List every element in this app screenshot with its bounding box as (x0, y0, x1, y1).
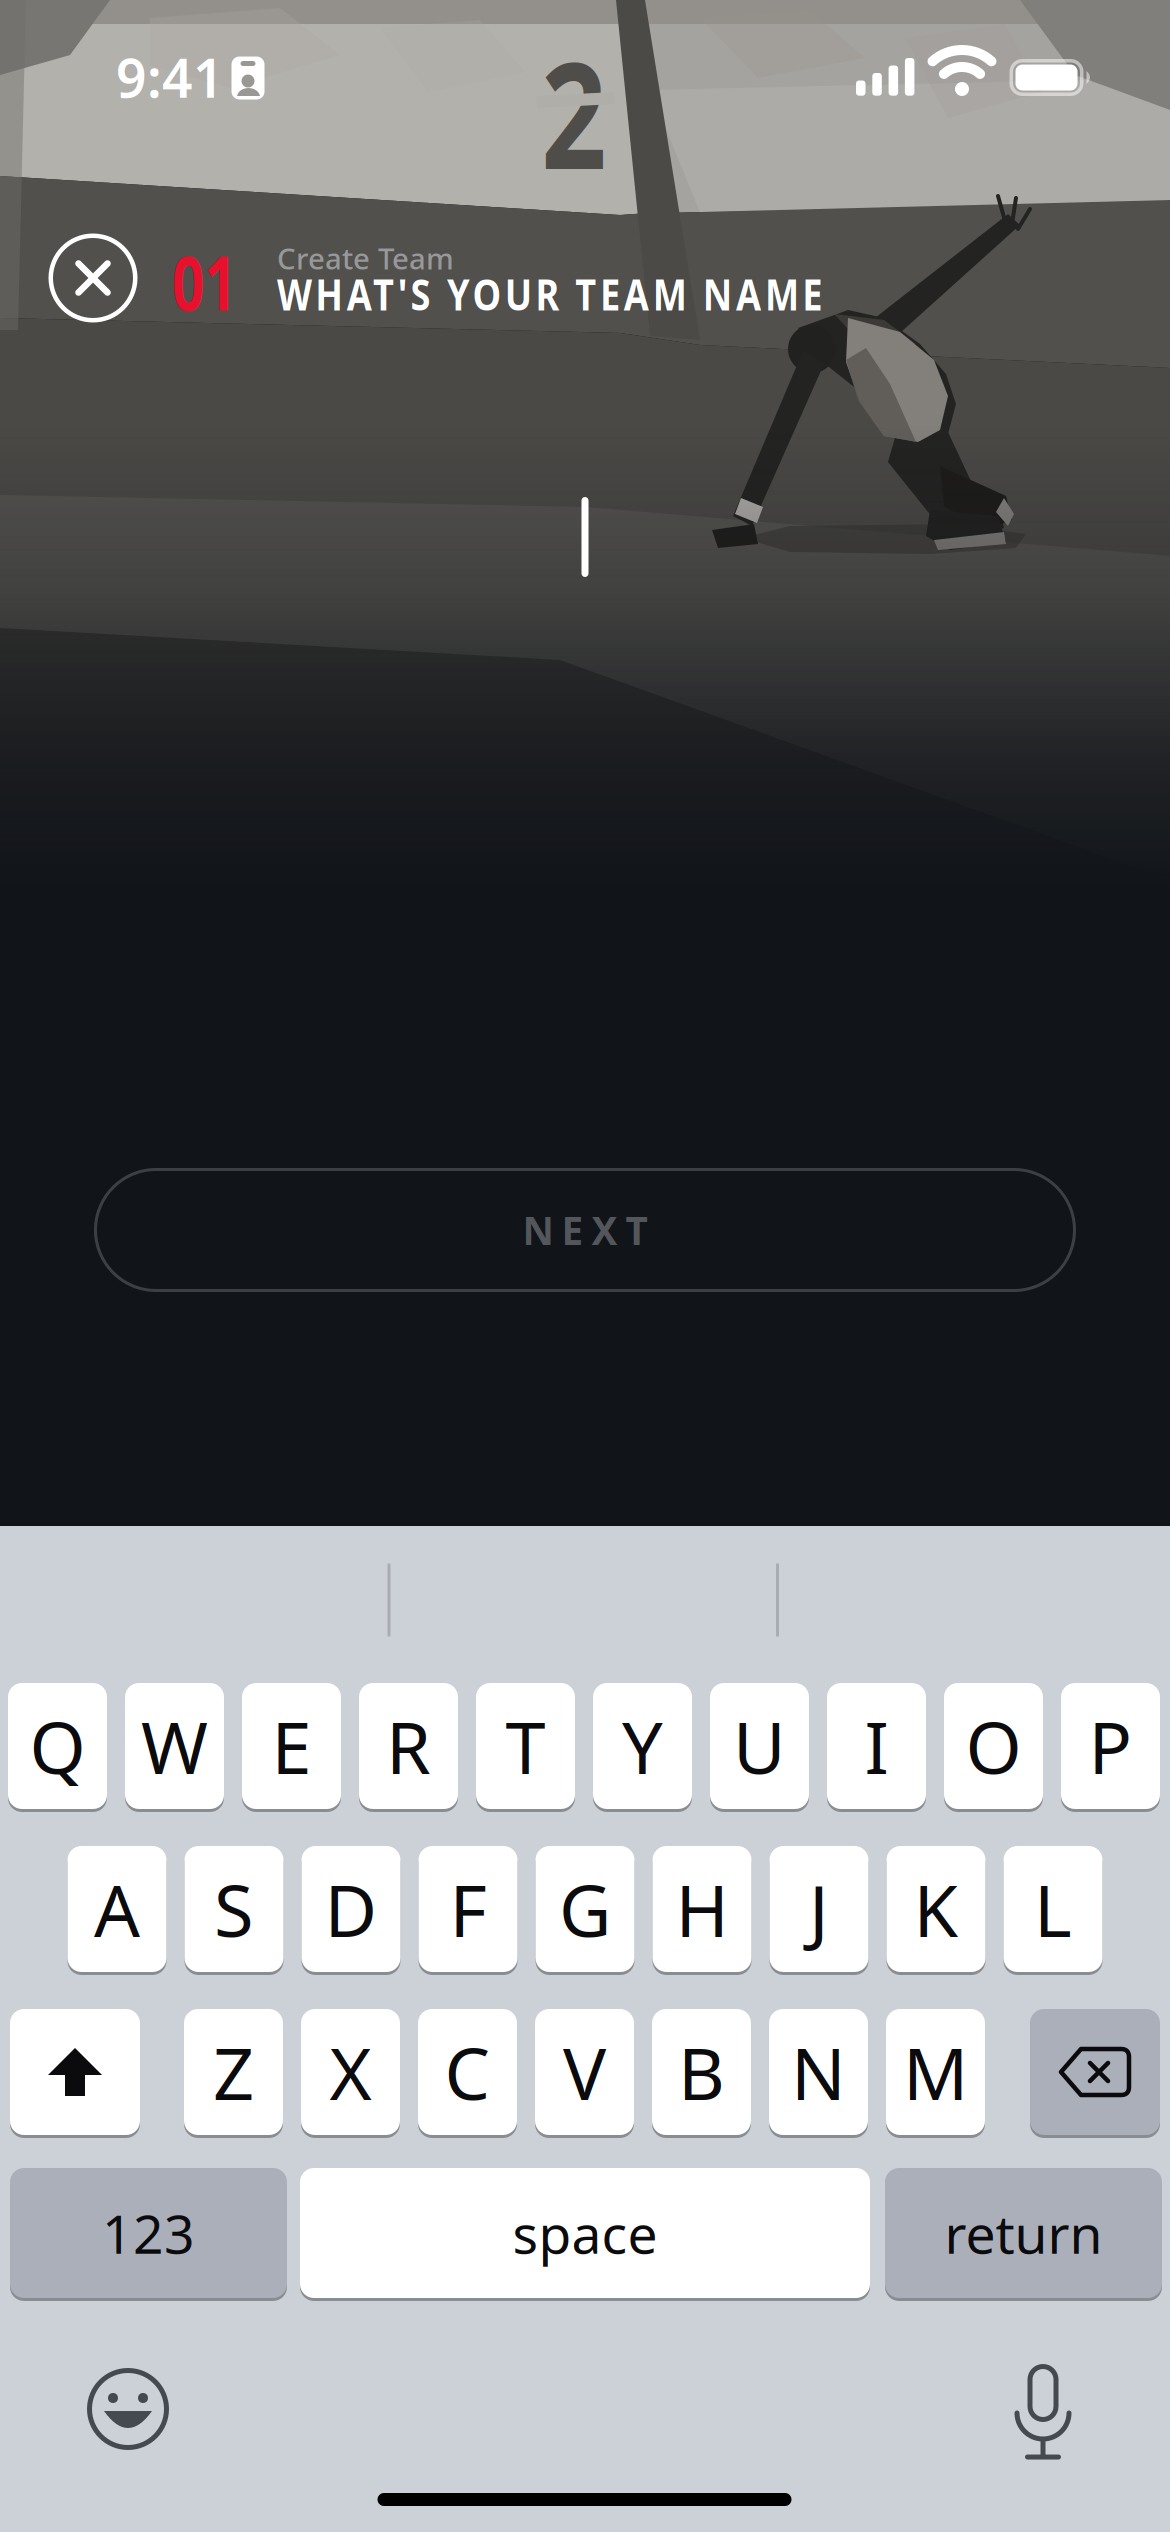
button[interactable]: I (827, 1681, 926, 1811)
staticText: N (791, 2024, 846, 2120)
button[interactable]: E (242, 1681, 341, 1811)
button[interactable]: H (652, 1844, 751, 1974)
button[interactable]: Emoji (87, 2368, 169, 2450)
staticText: Y (622, 1698, 663, 1794)
staticText: F (449, 1861, 486, 1957)
staticText: T (505, 1698, 545, 1794)
button[interactable]: A (67, 1844, 166, 1974)
staticText: E (271, 1698, 311, 1794)
staticText: 123 (102, 2198, 195, 2268)
button[interactable]: W (125, 1681, 224, 1811)
button[interactable]: space (300, 2166, 870, 2300)
button[interactable]: L (1003, 1844, 1102, 1974)
staticText: M (903, 2024, 968, 2120)
button[interactable]: U (710, 1681, 809, 1811)
button[interactable]: M (886, 2007, 985, 2137)
button[interactable]: T (476, 1681, 575, 1811)
staticText: O (965, 1698, 1021, 1794)
staticText: B (678, 2024, 725, 2120)
button[interactable]: Y (593, 1681, 692, 1811)
button[interactable]: C (418, 2007, 517, 2137)
button[interactable]: Close (48, 233, 137, 322)
staticText: S (214, 1861, 254, 1957)
staticText: return (944, 2198, 1102, 2268)
staticText: L (1034, 1861, 1072, 1957)
staticText: Z (213, 2024, 254, 2120)
staticText: R (386, 1698, 431, 1794)
staticText: W (141, 1698, 208, 1794)
staticText: NEXT (522, 1204, 647, 1256)
staticText: 2 (532, 15, 616, 209)
staticText: WHAT'S YOUR TEAM NAME (277, 266, 919, 322)
button[interactable]: Z (184, 2007, 283, 2137)
button[interactable]: 123 (10, 2166, 287, 2300)
button[interactable]: O (944, 1681, 1043, 1811)
button[interactable]: V (535, 2007, 634, 2137)
staticText: space (512, 2198, 657, 2268)
staticText: C (444, 2024, 490, 2120)
staticText: G (559, 1861, 611, 1957)
staticText: 9:41 (116, 42, 224, 112)
button[interactable]: J (769, 1844, 868, 1974)
staticText: U (733, 1698, 786, 1794)
button[interactable]: R (359, 1681, 458, 1811)
button[interactable]: NEXT (94, 1168, 1076, 1292)
button[interactable]: K (886, 1844, 985, 1974)
button[interactable]: N (769, 2007, 868, 2137)
staticText: D (324, 1861, 377, 1957)
staticText: H (675, 1861, 728, 1957)
button[interactable]: D (301, 1844, 400, 1974)
staticText: Create Team (277, 238, 454, 277)
button[interactable]: Q (8, 1681, 107, 1811)
staticText: 01 (172, 230, 258, 331)
button[interactable]: F (418, 1844, 517, 1974)
button[interactable]: B (652, 2007, 751, 2137)
button[interactable]: X (301, 2007, 400, 2137)
staticText: Q (29, 1698, 85, 1794)
staticText: I (864, 1698, 888, 1794)
button[interactable]: G (535, 1844, 634, 1974)
staticText: A (94, 1861, 140, 1957)
staticText: X (329, 2024, 371, 2120)
staticText: V (563, 2024, 606, 2120)
button[interactable]: Dictate (1003, 2360, 1083, 2460)
button[interactable]: S (184, 1844, 283, 1974)
staticText: P (1088, 1698, 1132, 1794)
button[interactable]: return (885, 2166, 1162, 2300)
staticText: K (913, 1861, 958, 1957)
button[interactable]: Delete (1030, 2007, 1160, 2137)
button[interactable]: P (1061, 1681, 1160, 1811)
staticText: J (809, 1861, 829, 1957)
button[interactable]: Shift (10, 2007, 140, 2137)
